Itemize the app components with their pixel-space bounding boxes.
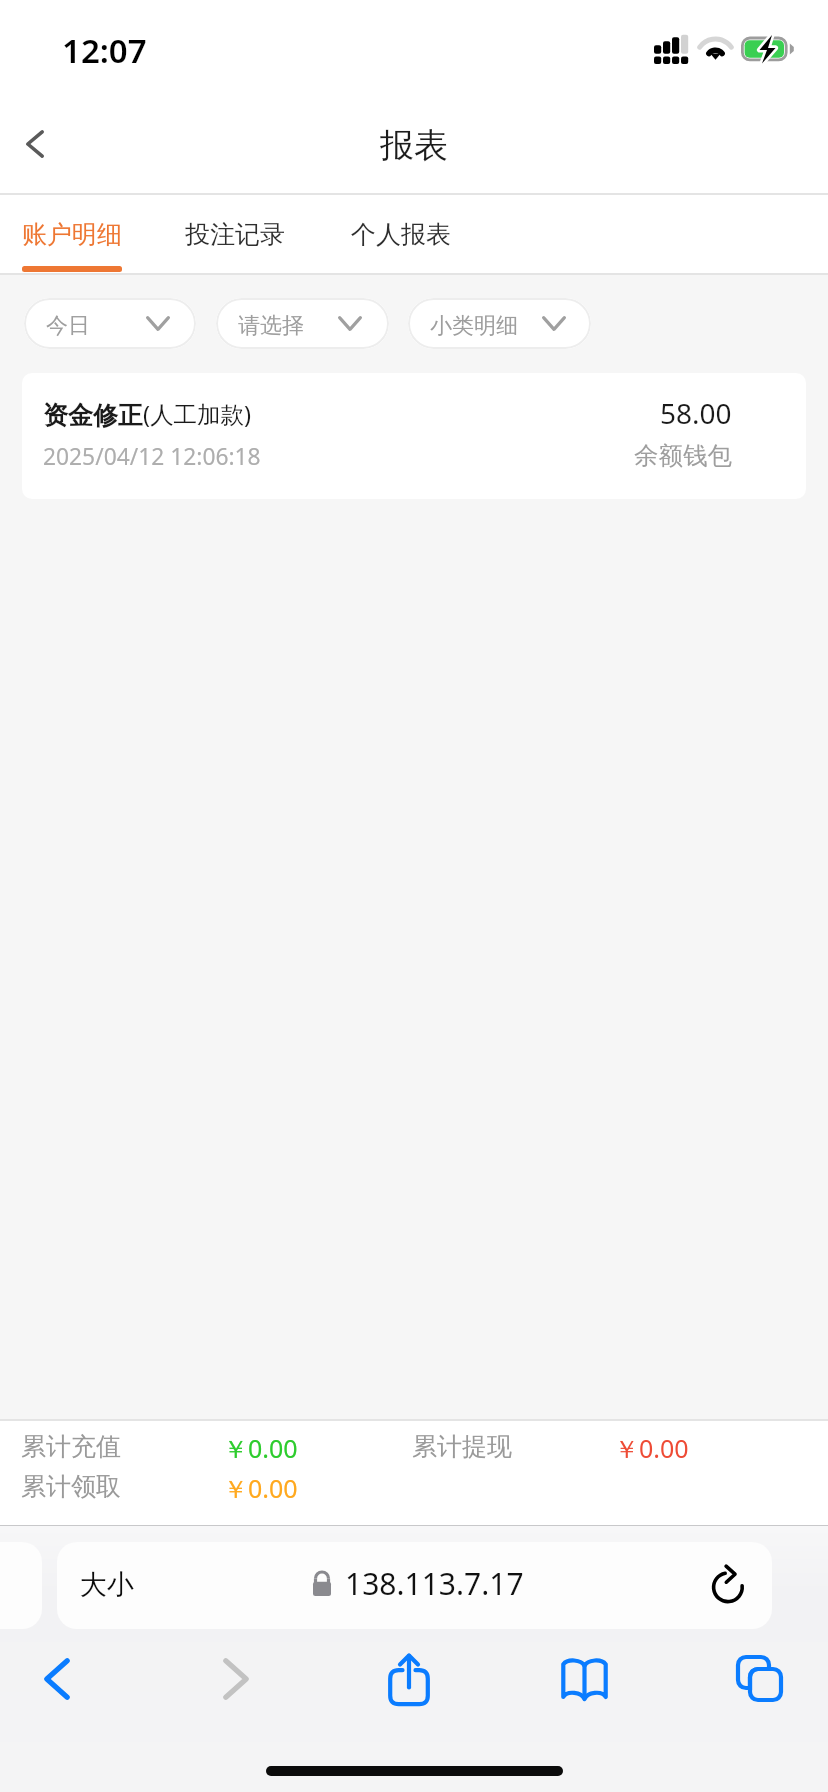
staticText: 今日 [46, 312, 90, 340]
staticText: 累计领取 [21, 1471, 121, 1502]
staticText: 2025/04/12 12:06:18 [43, 441, 261, 472]
staticText: 大小 [80, 1568, 134, 1602]
staticText: (人工加款) [143, 398, 252, 430]
staticText: 小类明细 [430, 312, 518, 340]
staticText: 个人报表 [351, 219, 451, 250]
staticText: 投注记录 [185, 219, 285, 250]
button[interactable]: Share [372, 1642, 446, 1716]
button[interactable]: Back [0, 105, 72, 183]
button[interactable]: 资金修正 [22, 373, 806, 499]
button[interactable]: Bookmarks [547, 1642, 621, 1716]
staticText: 报表 [380, 124, 448, 167]
staticText: 58.00 [660, 394, 732, 430]
staticText: 138.113.7.17 [345, 1563, 524, 1604]
staticText: 资金修正 [43, 400, 143, 431]
button[interactable]: 请选择 [216, 298, 389, 349]
button[interactable]: Reload [704, 1562, 750, 1608]
button[interactable]: Back [20, 1642, 94, 1716]
staticText: 余额钱包 [634, 440, 732, 471]
button[interactable]: 大小 [57, 1542, 772, 1629]
button[interactable]: 小类明细 [408, 298, 591, 349]
button[interactable]: 个人报表 [331, 196, 471, 273]
staticText: ￥0.00 [614, 1431, 689, 1465]
staticText: ￥0.00 [223, 1431, 298, 1465]
button[interactable]: 今日 [24, 298, 196, 349]
staticText: 12:07 [62, 28, 147, 73]
staticText: 请选择 [238, 312, 304, 340]
button[interactable]: Forward [199, 1642, 273, 1716]
staticText: 账户明细 [22, 219, 122, 250]
button[interactable]: 投注记录 [165, 196, 305, 273]
staticText: 累计充值 [21, 1431, 121, 1462]
staticText: ￥0.00 [223, 1471, 298, 1505]
staticText: 累计提现 [412, 1431, 512, 1462]
button[interactable]: 账户明细 [2, 196, 142, 273]
button[interactable]: Tabs [723, 1642, 797, 1716]
